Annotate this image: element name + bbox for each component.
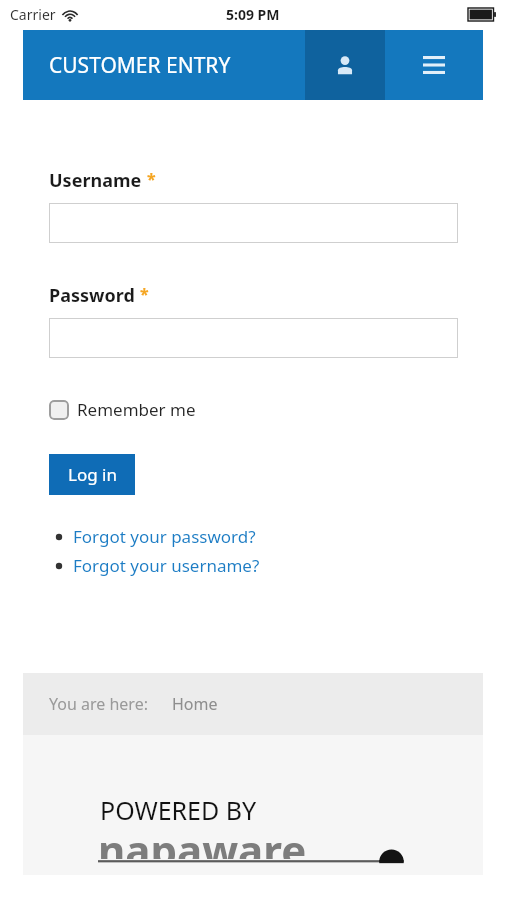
staticText: CUSTOMER ENTRY <box>49 51 231 80</box>
staticText: Forgot your password? <box>73 525 256 548</box>
button[interactable]: Forgot your password? <box>49 525 256 548</box>
button[interactable]: CUSTOMER ENTRY <box>23 30 305 100</box>
button[interactable]: Home <box>172 693 218 715</box>
button[interactable]: Forgot your username? <box>49 554 260 577</box>
staticText: Password <box>49 283 135 308</box>
staticText: * <box>140 283 149 305</box>
button[interactable] <box>49 203 458 243</box>
staticText: * <box>147 168 156 190</box>
staticText: Home <box>172 693 218 715</box>
staticText: POWERED BY <box>100 793 257 827</box>
staticText: napaware <box>98 821 307 859</box>
staticText: Log in <box>68 463 117 486</box>
button[interactable]: Menu <box>385 30 483 100</box>
button[interactable]: Log in <box>49 454 135 495</box>
staticText: You are here: <box>49 693 148 715</box>
staticText: 5:09 PM <box>226 5 280 24</box>
staticText: Remember me <box>77 398 196 421</box>
staticText: Carrier <box>10 5 56 24</box>
button[interactable] <box>49 318 458 358</box>
button[interactable]: Account <box>305 30 385 100</box>
staticText: Forgot your username? <box>73 554 260 577</box>
button[interactable]: Remember me <box>49 398 196 421</box>
staticText: Username <box>49 168 142 193</box>
